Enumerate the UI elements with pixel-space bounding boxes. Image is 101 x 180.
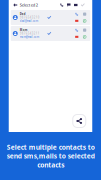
staticText: Selected 2 <box>20 2 38 8</box>
staticText: Dad <box>20 12 26 16</box>
button[interactable]: Mail <box>72 0 79 10</box>
button[interactable]: Share <box>72 114 86 128</box>
staticText: Select multiple contacts to send sms,mai… <box>6 143 94 169</box>
button[interactable]: Message <box>65 0 72 10</box>
button[interactable]: Mom <box>11 26 90 41</box>
button[interactable]: Select all <box>79 0 86 10</box>
staticText: Mom <box>20 28 28 32</box>
button[interactable]: Dad <box>11 10 90 25</box>
staticText: dad@mail.com <box>20 19 38 23</box>
staticText: mom@mail.com <box>20 35 39 39</box>
staticText: 9876543211 <box>20 32 40 35</box>
staticText: 9876543210 <box>20 16 40 19</box>
button[interactable]: Back <box>11 0 20 10</box>
button[interactable]: Call <box>58 0 65 10</box>
